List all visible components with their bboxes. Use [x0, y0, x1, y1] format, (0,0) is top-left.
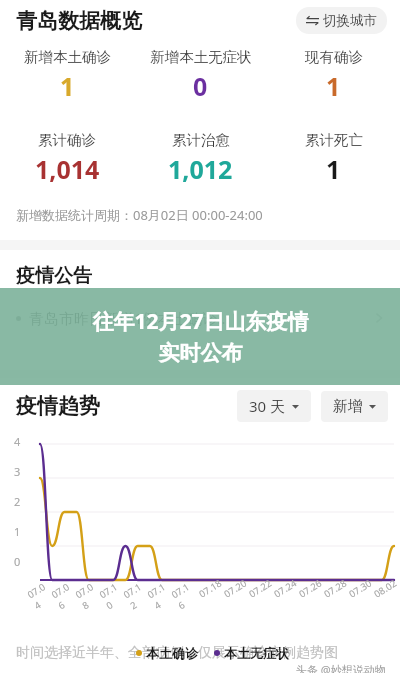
- staticText: 4: [14, 434, 21, 449]
- staticText: 0: [14, 554, 21, 569]
- staticText: 1: [326, 152, 341, 186]
- button[interactable]: 青岛市昨日新增1例本土确诊…: [0, 308, 400, 328]
- staticText: 新增本土确诊: [24, 48, 111, 66]
- button[interactable]: 新增本土无症状: [134, 48, 267, 103]
- staticText: 07.28: [321, 576, 350, 601]
- staticText: 2: [14, 494, 21, 509]
- staticText: 时间选择近半年、全部病例，仅展示确诊病例趋势图: [16, 644, 338, 662]
- staticText: 本土无症状: [224, 645, 289, 661]
- staticText: 08.02: [371, 576, 400, 601]
- staticText: 07.06: [49, 578, 83, 612]
- staticText: 30 天: [249, 396, 286, 416]
- staticText: 07.10: [97, 578, 131, 612]
- button[interactable]: 30 天: [237, 390, 311, 422]
- staticText: 切换城市: [323, 12, 377, 29]
- staticText: 累计死亡: [305, 131, 363, 149]
- staticText: 青岛市昨日新增1例本土确诊…: [29, 308, 230, 328]
- staticText: 07.30: [346, 576, 375, 601]
- staticText: 07.12: [121, 578, 155, 612]
- staticText: 07.14: [145, 578, 179, 612]
- staticText: 07.24: [271, 576, 300, 601]
- staticText: 累计治愈: [172, 131, 230, 149]
- staticText: 新增: [333, 397, 363, 416]
- staticText: 往年12月27日山东疫情 实时公布: [92, 307, 309, 366]
- other: 切换城市: [306, 14, 319, 27]
- staticText: 累计确诊: [38, 131, 96, 149]
- staticText: 1,014: [35, 152, 100, 186]
- staticText: 头条 @妙想说动物: [296, 662, 386, 673]
- staticText: 青岛数据概览: [16, 8, 142, 34]
- staticText: 07.20: [221, 576, 250, 601]
- staticText: 本土确诊: [146, 645, 198, 661]
- staticText: 07.08: [73, 578, 107, 612]
- staticText: 0: [193, 69, 208, 103]
- staticText: 现有确诊: [305, 48, 363, 66]
- staticText: 07.04: [25, 578, 59, 612]
- staticText: 1: [326, 69, 341, 103]
- staticText: 07.26: [296, 576, 325, 601]
- button[interactable]: 累计治愈: [134, 131, 267, 186]
- staticText: 3: [14, 464, 21, 479]
- button[interactable]: 新增: [321, 391, 388, 422]
- staticText: 1: [60, 69, 75, 103]
- staticText: 疫情公告: [16, 264, 92, 288]
- button[interactable]: 切换城市: [296, 7, 387, 34]
- staticText: 07.18: [196, 576, 225, 601]
- staticText: 1,012: [168, 152, 233, 186]
- button[interactable]: 现有确诊: [267, 48, 400, 103]
- staticText: 新增本土无症状: [150, 48, 252, 66]
- button[interactable]: 新增本土确诊: [0, 48, 134, 103]
- staticText: 疫情趋势: [16, 393, 100, 419]
- staticText: 07.22: [246, 576, 275, 601]
- staticText: 07.16: [169, 578, 203, 612]
- button[interactable]: 累计确诊: [0, 131, 134, 186]
- staticText: 1: [14, 524, 21, 539]
- staticText: 新增数据统计周期：08月02日 00:00-24:00: [16, 206, 263, 224]
- button[interactable]: 累计死亡: [267, 131, 400, 186]
